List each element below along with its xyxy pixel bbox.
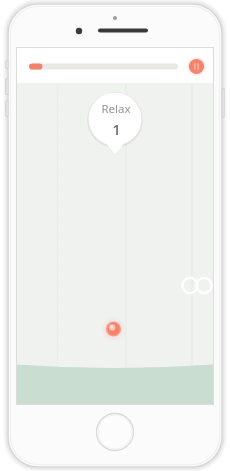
- button[interactable]: Home: [96, 413, 134, 451]
- staticText: 1: [112, 119, 121, 137]
- button[interactable]: Loop: [179, 275, 213, 296]
- staticText: Relax: [101, 101, 131, 117]
- button[interactable]: Pause: [187, 57, 206, 76]
- button[interactable]: Relax: [93, 101, 138, 137]
